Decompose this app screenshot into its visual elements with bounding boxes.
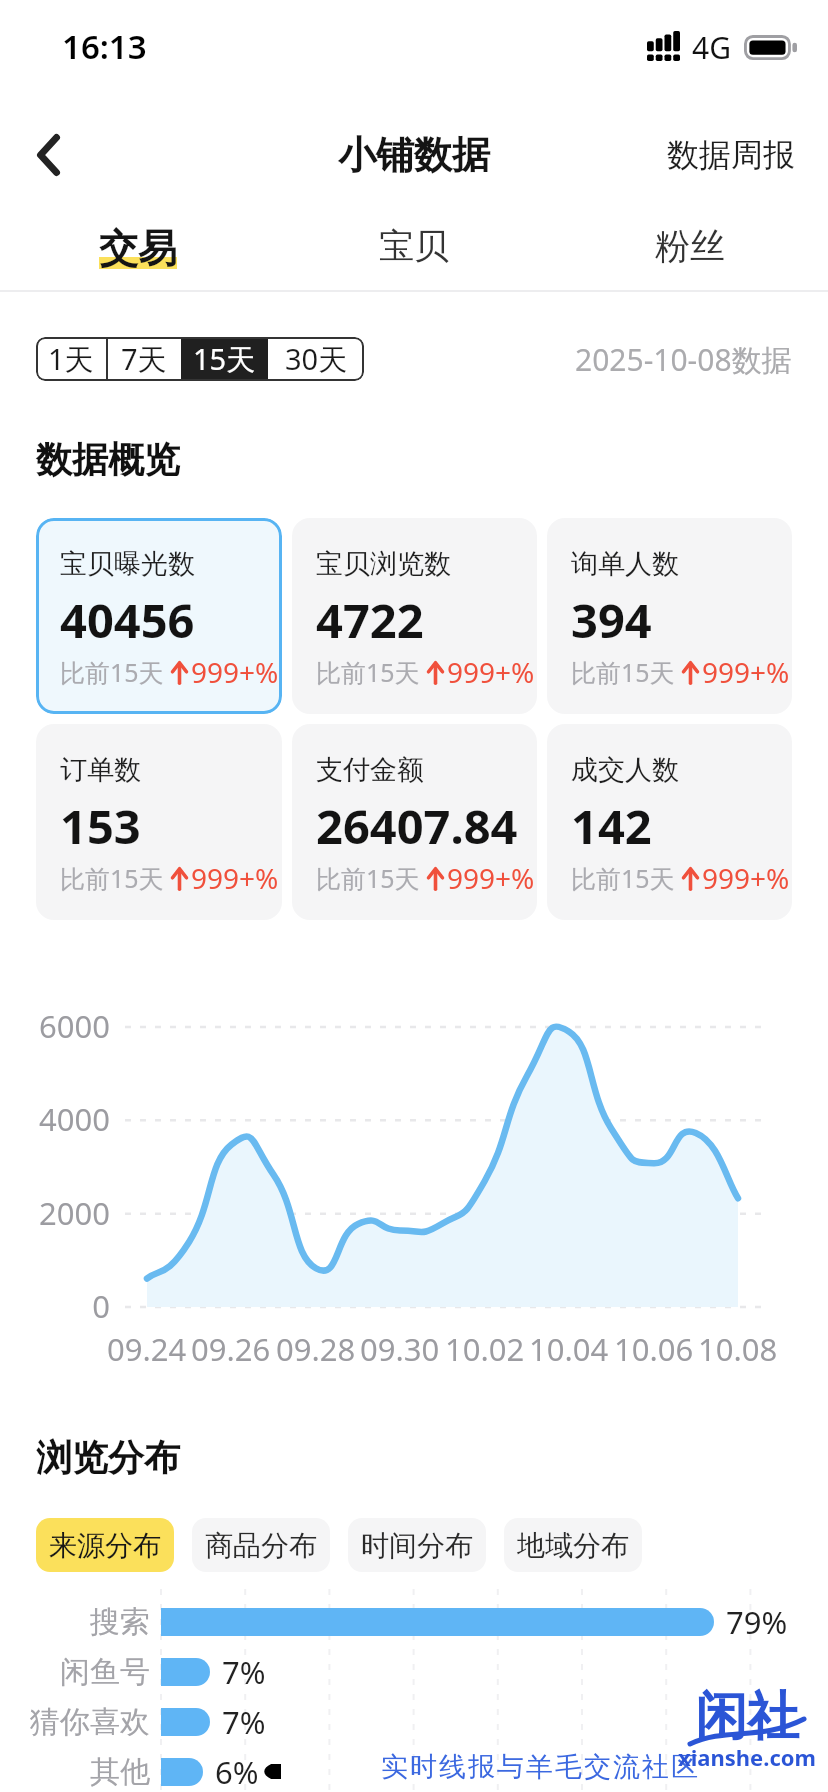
- staticText: 交易: [99, 224, 177, 273]
- staticText: 09.28: [276, 1328, 356, 1370]
- staticText: 10.02: [445, 1328, 525, 1370]
- staticText: 10.04: [529, 1328, 609, 1370]
- staticText: 999+%: [191, 859, 279, 897]
- staticText: 6%: [215, 1751, 259, 1792]
- staticText: 实时线报与羊毛交流社区: [380, 1750, 699, 1784]
- staticText: 猜你喜欢: [0, 1703, 150, 1741]
- button[interactable]: 支付金额: [292, 724, 537, 920]
- button[interactable]: 数据周报: [637, 104, 828, 206]
- staticText: 0: [0, 1285, 110, 1327]
- button[interactable]: 15天: [181, 337, 268, 381]
- button[interactable]: 宝贝: [276, 198, 552, 290]
- staticText: 宝贝曝光数: [60, 547, 195, 581]
- button[interactable]: 宝贝曝光数: [36, 518, 282, 714]
- staticText: 79%: [726, 1601, 788, 1643]
- staticText: 其他: [0, 1753, 150, 1791]
- staticText: 来源分布: [49, 1528, 161, 1563]
- button[interactable]: 询单人数: [547, 518, 792, 714]
- staticText: 浏览分布: [36, 1435, 180, 1480]
- staticText: 订单数: [60, 753, 141, 787]
- staticText: 09.26: [191, 1328, 271, 1370]
- staticText: 09.30: [360, 1328, 440, 1370]
- staticText: 999+%: [702, 653, 790, 691]
- staticText: 7%: [222, 1701, 266, 1743]
- button[interactable]: 30天: [268, 337, 364, 381]
- staticText: xianshe.com: [678, 1742, 816, 1772]
- staticText: 15天: [193, 339, 256, 379]
- button[interactable]: 订单数: [36, 724, 282, 920]
- staticText: 4722: [316, 588, 424, 652]
- staticText: 支付金额: [316, 753, 424, 787]
- staticText: 小铺数据: [338, 131, 490, 179]
- staticText: 999+%: [191, 653, 279, 691]
- button[interactable]: 7天: [106, 337, 181, 381]
- staticText: 闲社: [695, 1684, 799, 1750]
- staticText: 4000: [0, 1098, 110, 1140]
- staticText: 比前15天: [571, 861, 675, 895]
- staticText: 999+%: [702, 859, 790, 897]
- button[interactable]: 时间分布: [348, 1518, 486, 1572]
- button[interactable]: 商品分布: [192, 1518, 330, 1572]
- button[interactable]: 宝贝浏览数: [292, 518, 537, 714]
- staticText: 10.08: [698, 1328, 778, 1370]
- staticText: 2025-10-08数据: [575, 339, 792, 380]
- staticText: 成交人数: [571, 753, 679, 787]
- staticText: 宝贝: [379, 224, 449, 268]
- staticText: 数据周报: [667, 135, 795, 175]
- staticText: 2000: [0, 1192, 110, 1234]
- staticText: 142: [571, 794, 652, 858]
- staticText: 4G: [692, 27, 731, 68]
- staticText: 询单人数: [571, 547, 679, 581]
- button[interactable]: 粉丝: [552, 198, 828, 290]
- staticText: 时间分布: [361, 1528, 473, 1563]
- staticText: 26407.84: [316, 794, 518, 858]
- button[interactable]: 地域分布: [504, 1518, 642, 1572]
- staticText: 搜索: [0, 1603, 150, 1641]
- staticText: 30天: [285, 339, 348, 379]
- staticText: 09.24: [107, 1328, 187, 1370]
- staticText: 地域分布: [517, 1528, 629, 1563]
- staticText: 16:13: [62, 24, 147, 69]
- staticText: 商品分布: [205, 1528, 317, 1563]
- staticText: 闲鱼号: [0, 1653, 150, 1691]
- button[interactable]: 1天: [36, 337, 106, 381]
- staticText: 394: [571, 588, 652, 652]
- button[interactable]: 来源分布: [36, 1518, 174, 1572]
- staticText: 比前15天: [316, 655, 420, 689]
- staticText: 1天: [48, 339, 94, 379]
- staticText: 153: [60, 794, 141, 858]
- button[interactable]: 成交人数: [547, 724, 792, 920]
- staticText: 比前15天: [316, 861, 420, 895]
- staticText: 宝贝浏览数: [316, 547, 451, 581]
- staticText: 粉丝: [655, 224, 725, 268]
- staticText: 999+%: [447, 653, 535, 691]
- button[interactable]: Back: [0, 104, 96, 206]
- staticText: 6000: [0, 1005, 110, 1047]
- staticText: 比前15天: [60, 861, 164, 895]
- button[interactable]: 交易: [0, 198, 276, 290]
- staticText: 40456: [60, 588, 195, 652]
- staticText: 999+%: [447, 859, 535, 897]
- staticText: 7%: [222, 1651, 266, 1693]
- staticText: 比前15天: [60, 655, 164, 689]
- staticText: 7天: [121, 339, 167, 379]
- staticText: 10.06: [614, 1328, 694, 1370]
- staticText: 数据概览: [36, 437, 180, 482]
- staticText: 比前15天: [571, 655, 675, 689]
